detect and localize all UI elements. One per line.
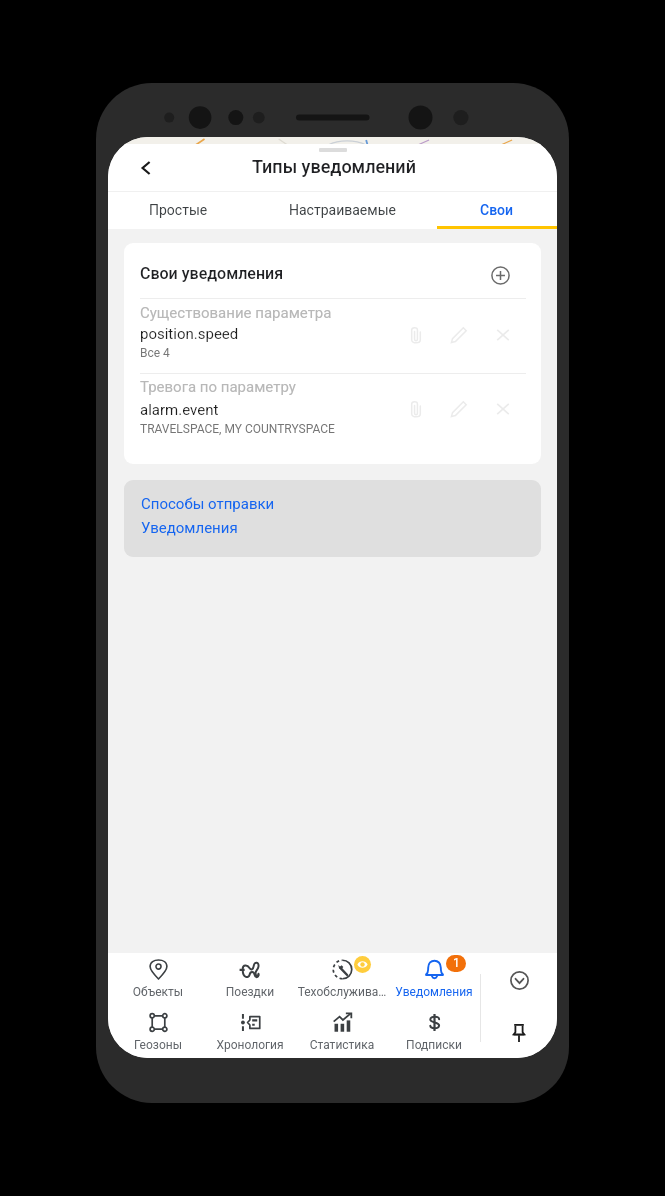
staticText: Все 4 bbox=[140, 346, 170, 360]
staticText: Статистика bbox=[296, 1038, 388, 1052]
staticText: Простые bbox=[149, 202, 208, 218]
button[interactable]: Прикрепить bbox=[398, 391, 434, 427]
staticText: Геозоны bbox=[112, 1038, 204, 1052]
button[interactable]: Добавить bbox=[486, 261, 514, 289]
button[interactable]: Свои bbox=[437, 192, 557, 229]
button[interactable]: Развернуть bbox=[481, 953, 557, 1006]
button[interactable]: Редактировать bbox=[441, 391, 477, 427]
button[interactable]: Закрепить bbox=[481, 1006, 557, 1058]
button[interactable]: Статистика bbox=[296, 1006, 388, 1058]
staticText: Тревога по параметру bbox=[140, 378, 296, 396]
staticText: TRAVELSPACE, MY COUNTRYSPACE bbox=[140, 422, 335, 436]
staticText: Свои уведомления bbox=[140, 264, 284, 283]
button[interactable]: Удалить bbox=[485, 317, 521, 353]
button[interactable]: Назад bbox=[124, 146, 168, 190]
button[interactable]: Уведомления bbox=[141, 519, 238, 537]
button[interactable]: Прикрепить bbox=[398, 317, 434, 353]
staticText: Поездки bbox=[204, 985, 296, 999]
staticText: Существование параметра bbox=[140, 304, 332, 322]
button[interactable]: Техобслужива… bbox=[296, 953, 388, 1006]
button[interactable]: Настраиваемые bbox=[248, 192, 437, 229]
button[interactable]: 1 bbox=[388, 953, 480, 1006]
staticText: Объекты bbox=[112, 985, 204, 999]
staticText: Свои bbox=[480, 202, 514, 218]
staticText: position.speed bbox=[140, 325, 239, 343]
staticText: 1 bbox=[453, 956, 460, 970]
staticText: Уведомления bbox=[388, 985, 480, 999]
staticText: Подписки bbox=[388, 1038, 480, 1052]
staticText: Хронология bbox=[204, 1038, 296, 1052]
staticText: Настраиваемые bbox=[289, 202, 396, 218]
staticText: alarm.event bbox=[140, 401, 219, 419]
button[interactable]: Способы отправки bbox=[141, 495, 275, 513]
button[interactable]: Простые bbox=[108, 192, 248, 229]
button[interactable]: Поездки bbox=[204, 953, 296, 1006]
button[interactable]: Геозоны bbox=[112, 1006, 204, 1058]
button[interactable]: Объекты bbox=[112, 953, 204, 1006]
staticText: Техобслужива… bbox=[296, 985, 388, 999]
button[interactable]: Хронология bbox=[204, 1006, 296, 1058]
button[interactable]: Подписки bbox=[388, 1006, 480, 1058]
button[interactable]: Редактировать bbox=[441, 317, 477, 353]
staticText: Типы уведомлений bbox=[252, 156, 416, 177]
button[interactable]: Удалить bbox=[485, 391, 521, 427]
